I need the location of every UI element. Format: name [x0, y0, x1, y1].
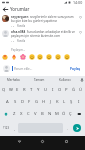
button[interactable]: Z [11, 108, 18, 120]
button[interactable]: Send [70, 123, 84, 133]
staticText: W [9, 87, 13, 93]
button[interactable]: Yanıtla [17, 24, 26, 27]
button[interactable]: Shift [1, 108, 11, 120]
button[interactable]: Ö [60, 108, 67, 120]
button[interactable]: Paylaş [69, 67, 82, 71]
button[interactable]: E [14, 84, 21, 96]
button[interactable]: G [33, 96, 40, 108]
staticText: 14:00 [73, 0, 83, 5]
button[interactable]: Q [1, 84, 7, 96]
button[interactable]: S [11, 96, 19, 108]
button[interactable]: Kullanıcı [52, 76, 78, 84]
staticText: C [27, 111, 30, 117]
button[interactable]: R [21, 84, 28, 96]
staticText: R [23, 87, 26, 93]
button[interactable]: Voice input [78, 76, 85, 84]
staticText: S [14, 99, 17, 105]
staticText: Ğ [72, 87, 76, 93]
button[interactable]: Emoji [46, 54, 52, 60]
staticText: L [63, 99, 66, 105]
button[interactable]: P [63, 84, 70, 96]
staticText: Paylaşım... [11, 48, 26, 52]
button[interactable]: X [18, 108, 25, 120]
staticText: I [52, 87, 54, 93]
button[interactable]: A [3, 96, 11, 108]
staticText: A [6, 99, 9, 105]
button[interactable]: Emoji [20, 54, 26, 60]
button[interactable]: Ü [77, 84, 84, 96]
staticText: Yorum ekle... [14, 67, 33, 71]
staticText: seyyarguen sevgilerimle sizlere sunuyoru… [11, 15, 77, 23]
button[interactable]: N [46, 108, 53, 120]
button[interactable]: Emoji [37, 54, 43, 60]
button[interactable]: M [53, 108, 60, 120]
button[interactable]: K [54, 96, 61, 108]
button[interactable]: Ş [68, 96, 75, 108]
staticText: Ş [70, 99, 73, 105]
button[interactable]: W [7, 84, 14, 96]
staticText: T [30, 87, 33, 93]
staticText: U [44, 87, 48, 93]
button[interactable]: Recents [62, 137, 71, 146]
staticText: Q [2, 87, 6, 93]
button[interactable]: V [32, 108, 39, 120]
staticText: G [35, 99, 39, 105]
staticText: P [65, 87, 68, 93]
staticText: Tamam [34, 78, 45, 82]
button[interactable]: Like [78, 30, 83, 35]
staticText: Ç [69, 111, 72, 117]
staticText: I [78, 99, 80, 105]
staticText: Z [13, 111, 16, 117]
button[interactable]: U [42, 84, 49, 96]
button[interactable]: D [19, 96, 26, 108]
button[interactable]: C [25, 108, 32, 120]
button[interactable]: B [39, 108, 46, 120]
button[interactable]: Merhaba [0, 76, 26, 84]
staticText: D [21, 99, 25, 105]
button[interactable]: Emoji [11, 54, 17, 60]
button[interactable]: I [49, 84, 56, 96]
button[interactable]: Yanıtla [17, 39, 26, 42]
staticText: . [67, 126, 68, 131]
staticText: F [28, 99, 31, 105]
staticText: O [58, 87, 62, 93]
button[interactable]: Emoji [55, 54, 61, 60]
button[interactable]: Y [35, 84, 42, 96]
button[interactable]: H [40, 96, 47, 108]
staticText: Paylaş [70, 67, 81, 71]
staticText: , [14, 126, 15, 131]
button[interactable]: Emoji [2, 54, 8, 60]
button[interactable]: Yorum ekle... [12, 66, 69, 71]
button[interactable]: T [28, 84, 35, 96]
button[interactable]: seyyarguen sevgilerimle sizlere sunuyoru… [2, 15, 83, 27]
button[interactable]: , [12, 123, 17, 133]
button[interactable]: O [56, 84, 63, 96]
staticText: Ö [62, 111, 66, 117]
button[interactable]: I [75, 96, 82, 108]
button[interactable]: Back [15, 137, 24, 146]
staticText: M [55, 111, 59, 117]
staticText: 1 s [11, 39, 15, 42]
button[interactable]: Like [78, 15, 83, 20]
button[interactable]: Home [38, 137, 47, 146]
staticText: J [50, 99, 52, 105]
staticText: Yorumlar [10, 6, 30, 12]
staticText: Merhaba [7, 78, 20, 82]
staticText: Kullanıcı [59, 78, 71, 82]
button[interactable]: J [47, 96, 54, 108]
button[interactable]: afsa.n084 Sunuslardan arkadaşlar etkinli… [2, 30, 83, 42]
button[interactable]: Emoji [64, 54, 70, 60]
staticText: E [16, 87, 19, 93]
staticText: V [34, 111, 37, 117]
button[interactable]: Ç [67, 108, 74, 120]
button[interactable]: Back [2, 6, 9, 13]
button[interactable]: L [61, 96, 68, 108]
button[interactable]: F [26, 96, 33, 108]
button[interactable]: Emoji [29, 54, 35, 60]
button[interactable]: Ğ [70, 84, 77, 96]
button[interactable]: Tamam [26, 76, 52, 84]
button[interactable]: Backspace [74, 108, 84, 120]
button[interactable]: ?123 [1, 123, 12, 133]
